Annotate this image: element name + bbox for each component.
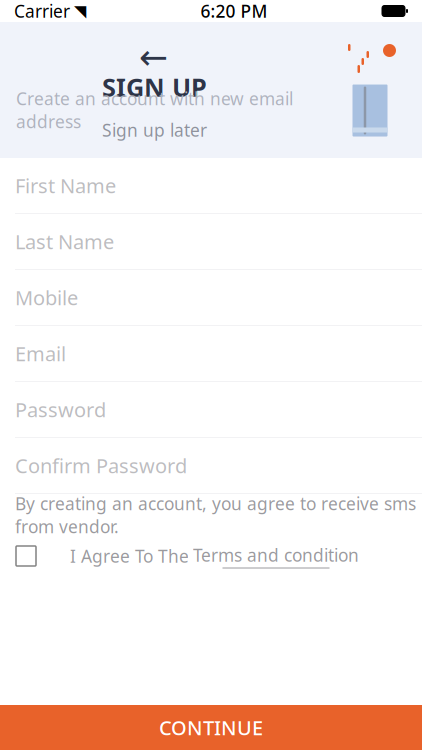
button[interactable]: Mobile — [0, 270, 422, 326]
staticText: ◥ — [74, 2, 86, 20]
button[interactable]: Last Name — [0, 214, 422, 270]
staticText: I Agree To The — [70, 544, 189, 567]
button[interactable]: Email — [0, 326, 422, 382]
button[interactable]: Password — [0, 382, 422, 438]
staticText: Mobile — [15, 284, 78, 311]
staticText: Password — [15, 396, 106, 423]
staticText: SIGN UP — [102, 70, 207, 104]
staticText: Sign up later — [102, 118, 207, 141]
staticText: By creating an account, you agree to rec… — [15, 492, 416, 538]
staticText: Confirm Password — [15, 452, 187, 479]
staticText: First Name — [15, 172, 116, 199]
staticText: Create an account with new email address — [16, 87, 293, 133]
staticText: Carrier — [14, 0, 70, 22]
button[interactable]: I Agree To The — [0, 536, 422, 576]
staticText: Terms and condition — [193, 543, 359, 566]
staticText: CONTINUE — [159, 714, 263, 741]
staticText: ← — [139, 37, 168, 77]
staticText: Email — [15, 340, 66, 367]
button[interactable]: First Name — [0, 158, 422, 214]
button[interactable]: Sign up later — [102, 120, 207, 140]
button[interactable]: Back — [132, 40, 174, 74]
staticText: 6:20 PM — [200, 0, 267, 22]
button[interactable]: Confirm Password — [0, 438, 422, 494]
button[interactable]: CONTINUE — [0, 705, 422, 750]
staticText: Last Name — [15, 228, 114, 255]
